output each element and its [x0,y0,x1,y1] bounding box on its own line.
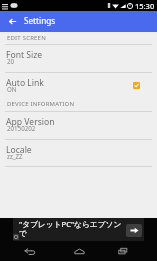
staticText: App Version [6,116,55,128]
button[interactable]: Font Size [0,47,157,72]
button[interactable]: App Version [0,114,157,139]
button[interactable]: Locale [0,142,157,167]
button[interactable]: Back [18,241,40,261]
button[interactable]: Open advertisement [126,224,142,237]
button[interactable]: Advertisement [0,218,157,241]
staticText: ON [7,85,17,93]
staticText: Locale [6,144,32,156]
button[interactable]: Home [68,241,90,261]
staticText: 20150202 [7,124,36,132]
staticText: "タブレットPC"ならエプソン [19,219,122,230]
button[interactable]: Recent apps [112,241,134,261]
staticText: 15:30 [135,1,155,11]
button[interactable]: Auto Link [0,75,157,100]
staticText: Auto Link [6,77,44,89]
staticText: Font Size [6,49,43,61]
button[interactable]: Back [2,11,22,31]
staticText: Settings [24,15,56,26]
staticText: DEVICE INFORMATION [7,100,75,108]
staticText: で [19,229,27,239]
staticText: EDIT SCREEN [7,34,46,42]
staticText: zz_ZZ [7,152,23,160]
staticText: 20 [7,57,15,65]
